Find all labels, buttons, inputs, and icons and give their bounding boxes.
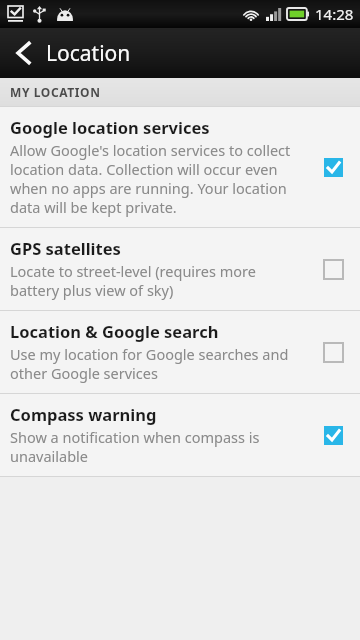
staticText: Location (46, 39, 131, 68)
staticText: Location & Google search (10, 320, 219, 342)
button[interactable]: GPS satellites (0, 228, 360, 310)
button[interactable]: Checked (314, 416, 352, 454)
button[interactable]: Compass warning (0, 394, 360, 476)
staticText: Allow Google's location services to coll… (10, 140, 308, 217)
button[interactable]: Google location services (0, 107, 360, 227)
button[interactable]: Unchecked (314, 333, 352, 371)
staticText: Compass warning (10, 403, 157, 425)
staticText: Locate to street-level (requires more ba… (10, 261, 308, 300)
button[interactable]: Unchecked (314, 250, 352, 288)
button[interactable]: Location & Google search (0, 311, 360, 393)
staticText: Use my location for Google searches and … (10, 344, 308, 383)
staticText: Show a notification when compass is unav… (10, 427, 308, 466)
staticText: GPS satellites (10, 237, 121, 259)
button[interactable]: Back (0, 28, 360, 78)
staticText: MY LOCATION (10, 84, 101, 100)
staticText: Google location services (10, 116, 210, 138)
staticText: 14:28 (315, 4, 354, 24)
button[interactable]: Checked (314, 148, 352, 186)
